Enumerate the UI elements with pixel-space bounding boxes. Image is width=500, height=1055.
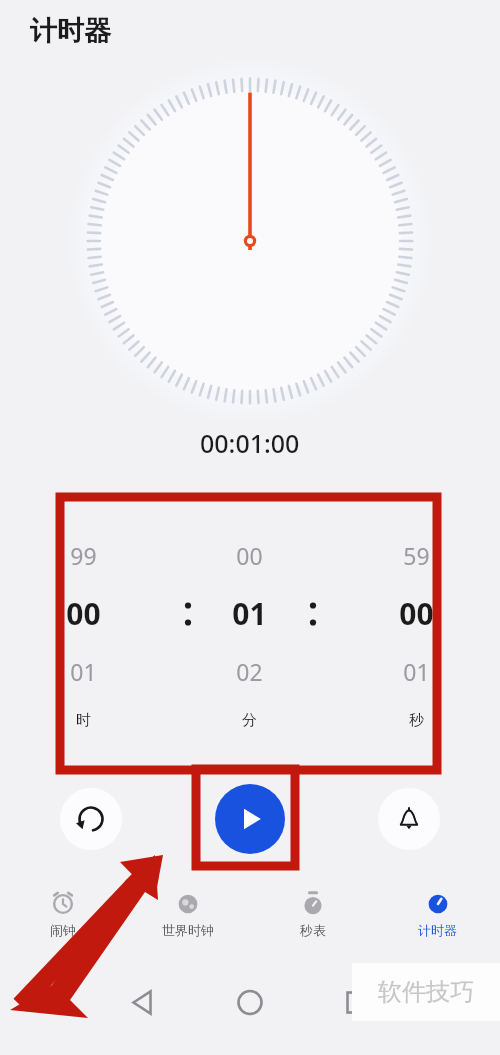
staticText: 99 (70, 540, 97, 571)
button[interactable]: 00 (333, 593, 500, 634)
staticText: 计时器 (418, 922, 457, 938)
button[interactable]: 01 (166, 593, 333, 634)
button[interactable]: 01 (333, 656, 500, 687)
button[interactable]: Reset (60, 788, 122, 850)
staticText: 秒 (409, 711, 424, 730)
button[interactable]: 02 (166, 656, 333, 687)
staticText: 02 (236, 656, 263, 687)
staticText: 59 (403, 540, 430, 571)
staticText: 00 (66, 593, 101, 634)
button[interactable]: 计时器 (375, 878, 500, 950)
staticText: 00:01:00 (200, 426, 300, 460)
button[interactable]: 闹钟 (0, 878, 125, 950)
button[interactable]: 世界时钟 (125, 878, 250, 950)
staticText: 闹钟 (50, 922, 76, 938)
staticText: 分 (242, 711, 257, 730)
button[interactable]: Ringtone (378, 788, 440, 850)
staticText: 软件技巧 (378, 977, 474, 1007)
staticText: 00 (236, 540, 263, 571)
button[interactable]: 秒表 (250, 878, 375, 950)
staticText: 秒表 (300, 922, 326, 938)
button[interactable]: 00 (166, 540, 333, 571)
staticText: 计时器 (30, 14, 111, 48)
staticText: 时 (76, 711, 91, 730)
button[interactable]: 00 (0, 593, 166, 634)
staticText: 00 (399, 593, 434, 634)
staticText: 世界时钟 (162, 922, 214, 938)
button[interactable]: 99 (0, 540, 166, 571)
staticText: 01 (232, 593, 267, 634)
button[interactable]: 01 (0, 656, 166, 687)
button[interactable]: 59 (333, 540, 500, 571)
staticText: 01 (70, 656, 97, 687)
staticText: 01 (403, 656, 430, 687)
button[interactable]: Start (215, 784, 285, 854)
